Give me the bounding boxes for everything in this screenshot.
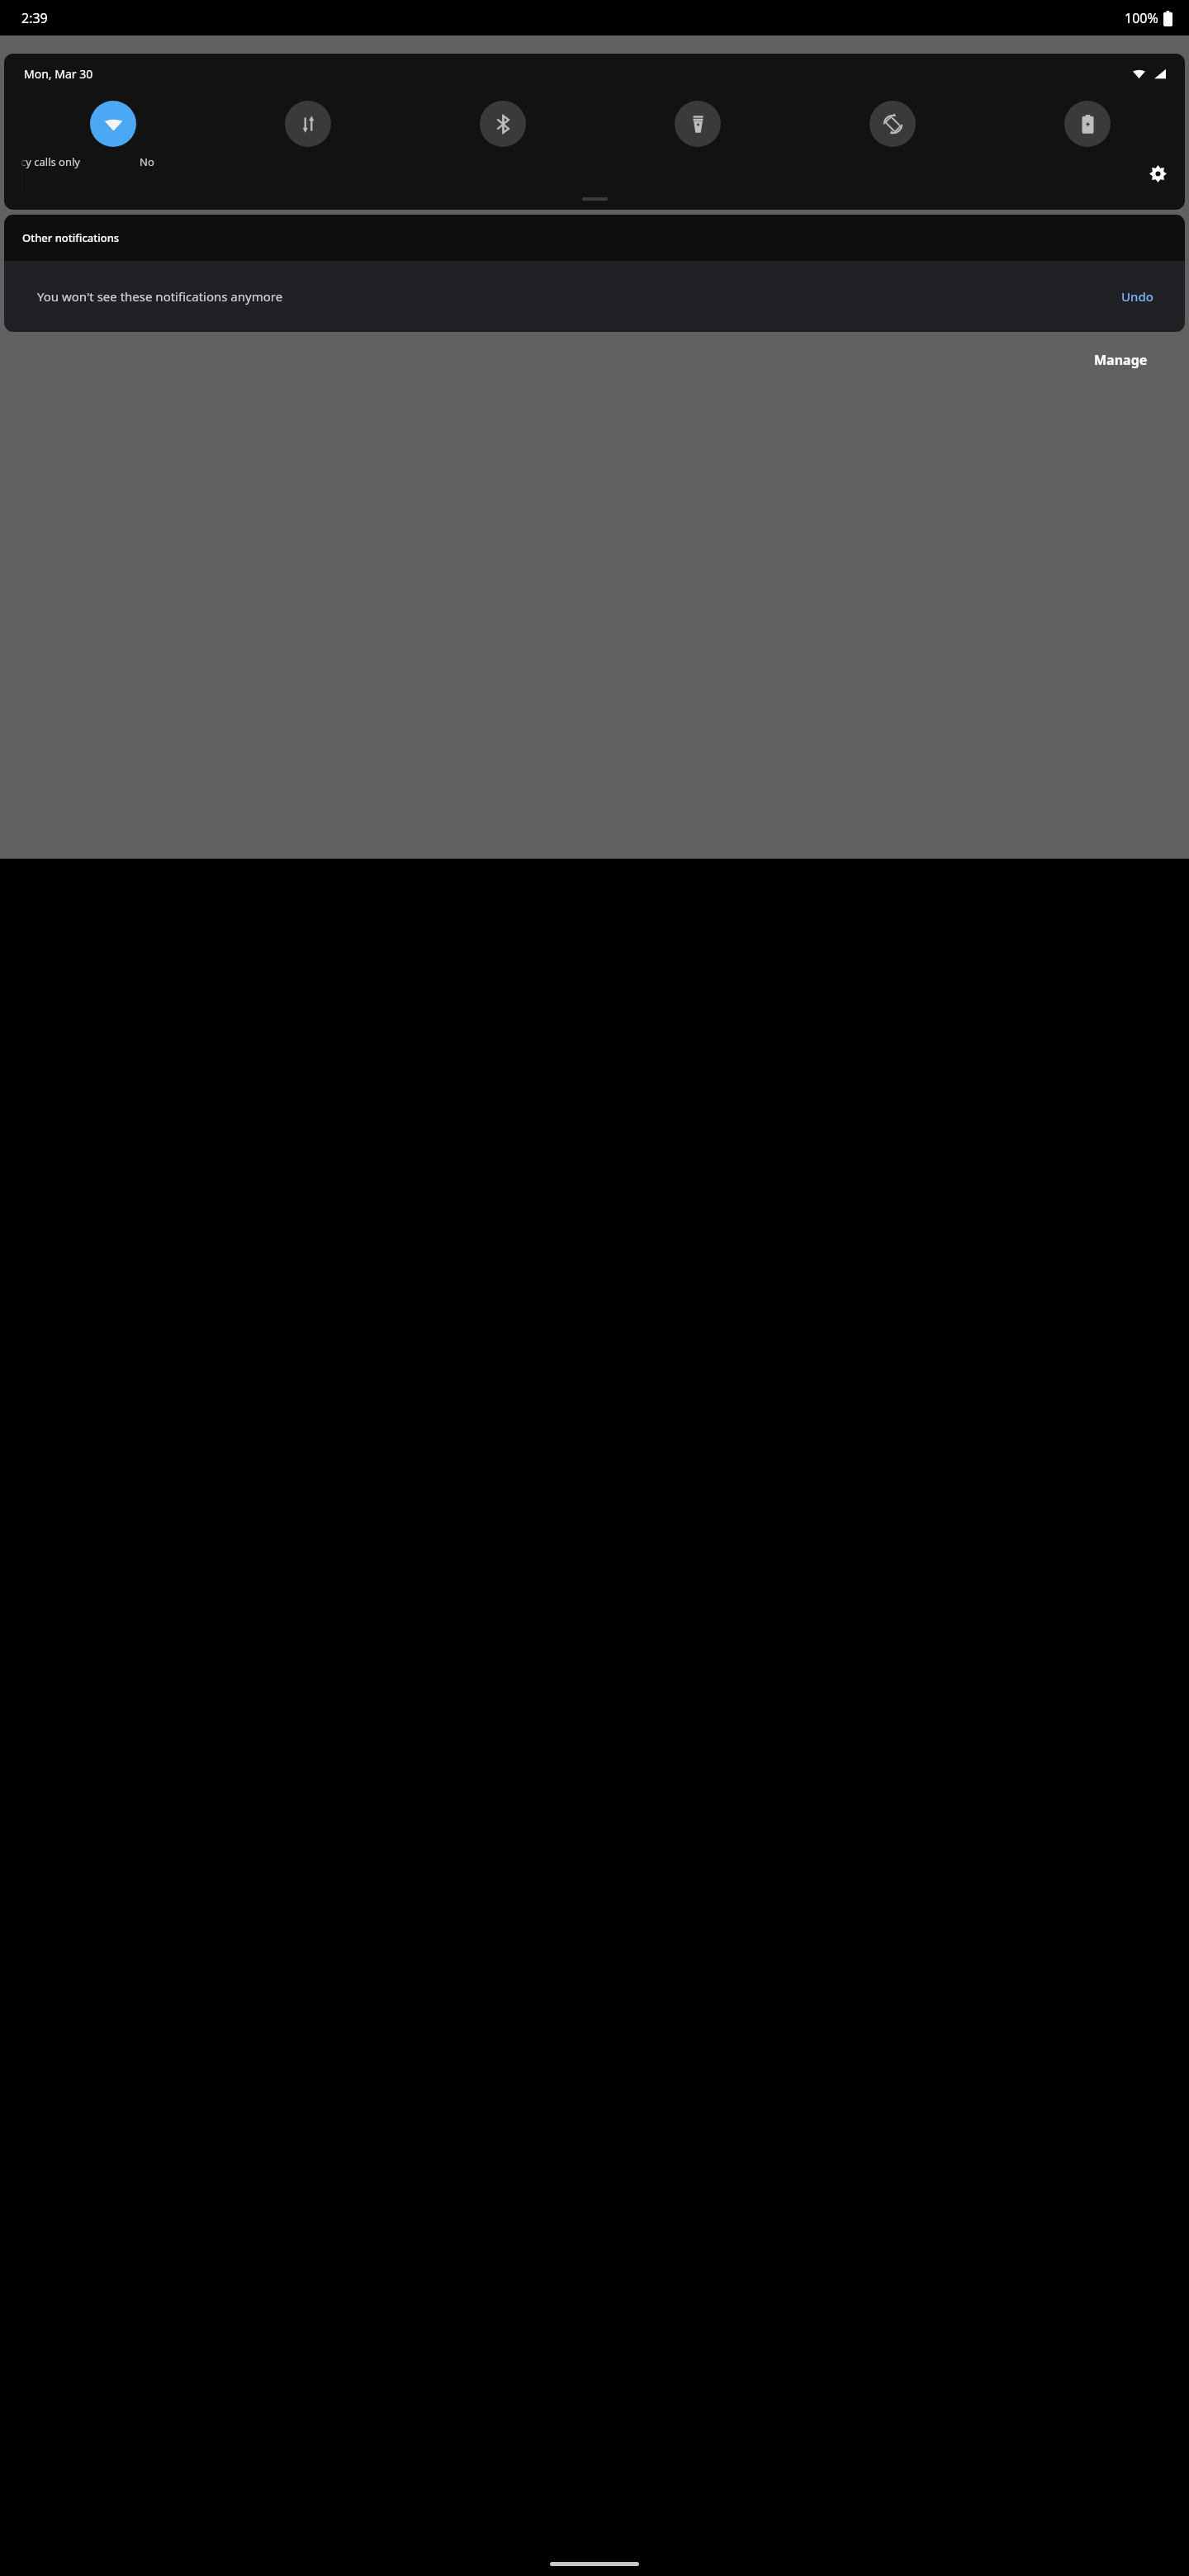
- button[interactable]: Settings: [1144, 159, 1172, 187]
- staticText: Other notifications: [22, 230, 120, 245]
- button[interactable]: Flashlight: [675, 101, 721, 147]
- button[interactable]: Bluetooth: [480, 101, 526, 147]
- button[interactable]: [582, 197, 608, 201]
- staticText: Undo: [1121, 288, 1153, 305]
- button[interactable]: Other notifications: [4, 215, 1185, 261]
- staticText: You won't see these notifications anymor…: [37, 288, 283, 305]
- staticText: Manage: [1094, 351, 1148, 369]
- staticText: cy calls only: [21, 154, 80, 169]
- button[interactable]: Undo: [1115, 283, 1160, 310]
- button[interactable]: Wi-Fi: [90, 101, 136, 147]
- staticText: No Service: [140, 154, 170, 169]
- button[interactable]: Battery Saver: [1064, 101, 1111, 147]
- staticText: Mon, Mar 30: [24, 66, 93, 82]
- staticText: 100%: [1125, 9, 1158, 27]
- button[interactable]: Mobile data: [285, 101, 331, 147]
- button[interactable]: Manage: [1086, 346, 1156, 374]
- staticText: 2:39: [21, 9, 48, 27]
- button[interactable]: Auto-rotate: [869, 101, 916, 147]
